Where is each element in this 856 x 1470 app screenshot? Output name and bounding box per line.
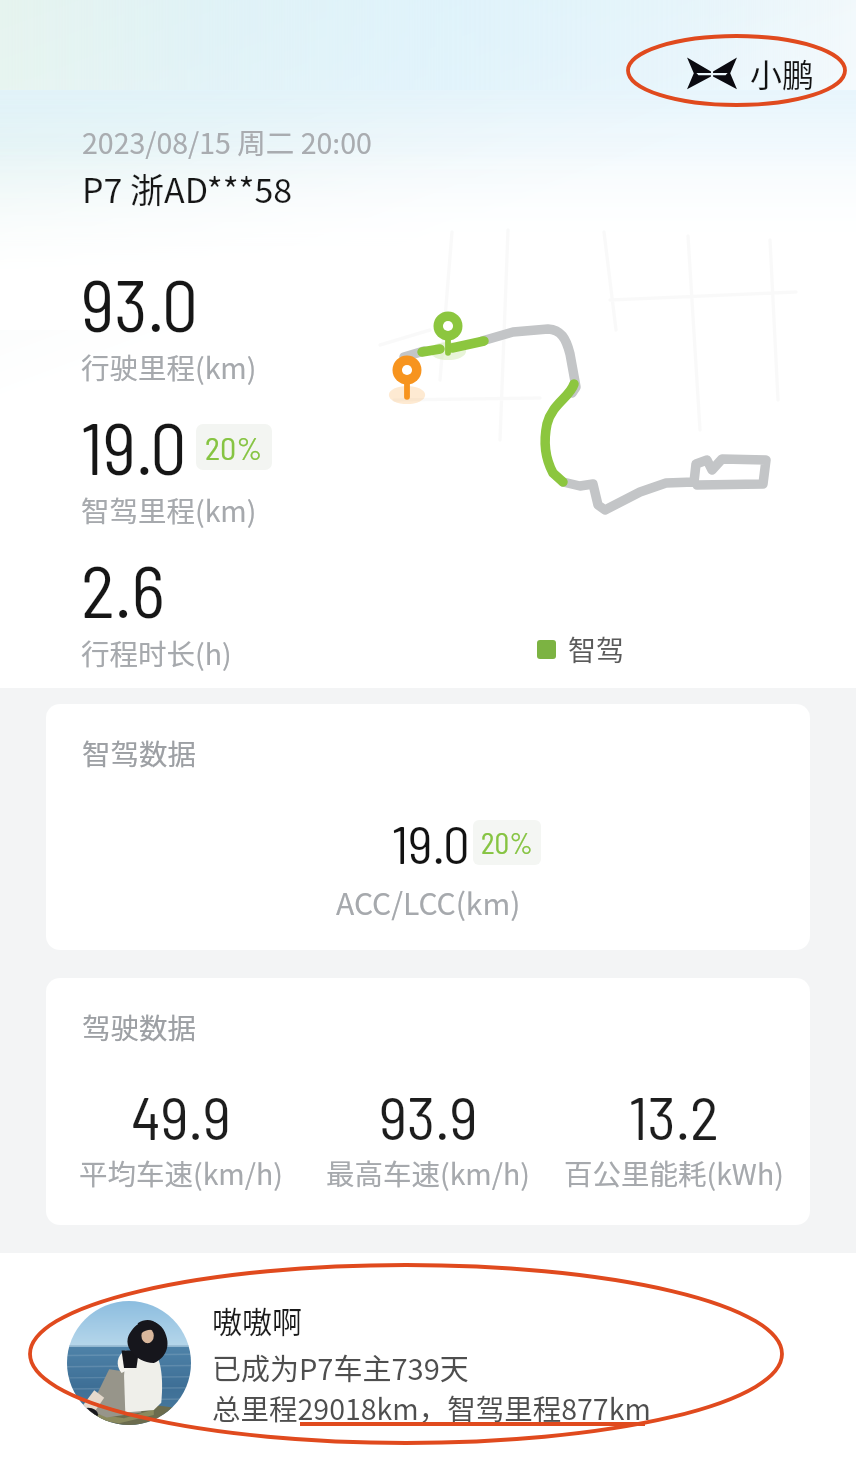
staticText: 93.9 bbox=[379, 1079, 478, 1152]
staticText: 最高车速(km/h) bbox=[326, 1152, 530, 1193]
staticText: 13.2 bbox=[629, 1079, 719, 1152]
staticText: 智驾数据 bbox=[82, 732, 197, 773]
button[interactable]: 嗷嗷啊 bbox=[60, 1285, 760, 1435]
staticText: 行驶里程(km) bbox=[81, 346, 257, 387]
staticText: 智驾 bbox=[568, 629, 625, 670]
staticText: 平均车速(km/h) bbox=[79, 1152, 283, 1193]
staticText: 19.0 bbox=[81, 403, 187, 489]
staticText: 百公里能耗(kWh) bbox=[564, 1152, 784, 1193]
staticText: 2.6 bbox=[81, 546, 165, 632]
button[interactable]: 智驾数据 bbox=[46, 704, 810, 950]
staticText: 19.0 bbox=[392, 811, 470, 875]
staticText: 49.9 bbox=[131, 1079, 231, 1152]
staticText: 嗷嗷啊 bbox=[212, 1298, 302, 1341]
staticText: 已成为P7车主739天 bbox=[212, 1346, 469, 1388]
staticText: 总里程29018km，智驾里程877km bbox=[212, 1387, 651, 1428]
staticText: 行程时长(h) bbox=[81, 632, 232, 673]
staticText: 93.0 bbox=[81, 260, 199, 346]
staticText: 20% bbox=[205, 428, 263, 466]
staticText: 2023/08/15 周二 20:00 bbox=[82, 121, 372, 162]
staticText: 驾驶数据 bbox=[82, 1006, 197, 1047]
staticText: 小鹏 bbox=[750, 50, 815, 96]
staticText: P7 浙AD***58 bbox=[82, 164, 293, 213]
staticText: 20% bbox=[481, 825, 533, 860]
button[interactable]: XPeng brand bbox=[684, 48, 817, 98]
staticText: ACC/LCC(km) bbox=[336, 880, 521, 923]
staticText: 智驾里程(km) bbox=[81, 489, 257, 530]
button[interactable]: 驾驶数据 bbox=[46, 978, 810, 1225]
